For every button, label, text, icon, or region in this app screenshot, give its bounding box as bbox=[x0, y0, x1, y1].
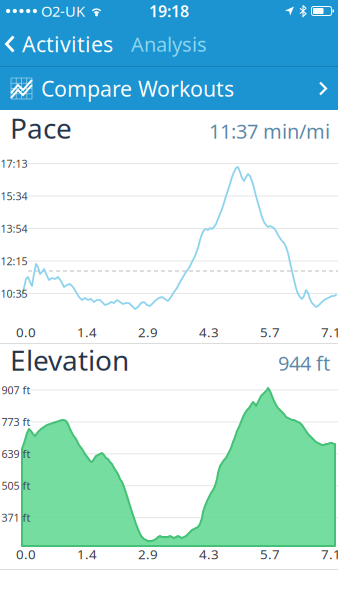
staticText: O2-UK bbox=[41, 1, 85, 21]
staticText: 13:54 bbox=[0, 221, 27, 236]
staticText: Pace bbox=[10, 109, 72, 147]
staticText: 1.4 bbox=[77, 545, 97, 563]
staticText: 12:15 bbox=[0, 254, 27, 268]
staticText: 4.3 bbox=[199, 545, 219, 563]
staticText: 5.7 bbox=[260, 545, 280, 563]
staticText: 0.0 bbox=[16, 545, 36, 563]
staticText: 17:13 bbox=[0, 156, 27, 171]
staticText: 4.3 bbox=[199, 323, 219, 341]
staticText: Elevation bbox=[10, 341, 129, 379]
staticText: 5.7 bbox=[260, 323, 280, 341]
staticText: 15:34 bbox=[0, 189, 27, 203]
staticText: 11:37 min/mi bbox=[209, 118, 330, 144]
button[interactable]: Compare Workouts bbox=[0, 67, 338, 110]
staticText: 639 ft bbox=[1, 447, 30, 461]
button[interactable]: Analysis bbox=[131, 31, 207, 57]
staticText: 19:18 bbox=[149, 0, 189, 22]
staticText: 2.9 bbox=[138, 545, 158, 563]
button[interactable]: Activities bbox=[5, 30, 113, 58]
staticText: 10:35 bbox=[0, 286, 27, 301]
staticText: 7.1 bbox=[321, 323, 338, 341]
staticText: 773 ft bbox=[1, 415, 30, 429]
staticText: 7.1 bbox=[321, 545, 338, 563]
staticText: 1.4 bbox=[77, 323, 97, 341]
staticText: 371 ft bbox=[1, 510, 30, 525]
staticText: 505 ft bbox=[1, 479, 30, 493]
staticText: Analysis bbox=[131, 31, 207, 57]
staticText: Activities bbox=[22, 30, 113, 58]
staticText: 0.0 bbox=[16, 323, 36, 341]
staticText: 2.9 bbox=[138, 323, 158, 341]
staticText: 944 ft bbox=[278, 350, 330, 376]
staticText: Compare Workouts bbox=[41, 74, 234, 103]
staticText: 907 ft bbox=[1, 383, 30, 397]
